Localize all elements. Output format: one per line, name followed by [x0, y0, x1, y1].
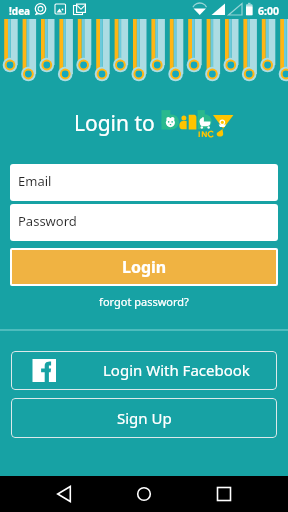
staticText: Login to	[74, 109, 155, 138]
button[interactable]: Recent apps	[200, 476, 248, 512]
button[interactable]: Password	[10, 204, 278, 241]
button[interactable]: Login With Facebook	[11, 351, 277, 390]
staticText: forgot password?	[0, 294, 288, 309]
staticText: !dea	[9, 4, 31, 18]
button[interactable]: Back	[40, 476, 88, 512]
button[interactable]: Home	[120, 476, 168, 512]
button[interactable]: Sign Up	[11, 398, 277, 438]
button[interactable]: Login	[12, 250, 276, 284]
button[interactable]: forgot password?	[0, 292, 288, 310]
button[interactable]: Email	[10, 164, 278, 201]
staticText: Email	[18, 172, 52, 190]
staticText: Sign Up	[117, 408, 172, 428]
staticText: Login	[122, 256, 167, 278]
staticText: Login With Facebook	[103, 360, 250, 380]
staticText: Password	[18, 212, 77, 230]
staticText: 6:00	[258, 4, 279, 18]
